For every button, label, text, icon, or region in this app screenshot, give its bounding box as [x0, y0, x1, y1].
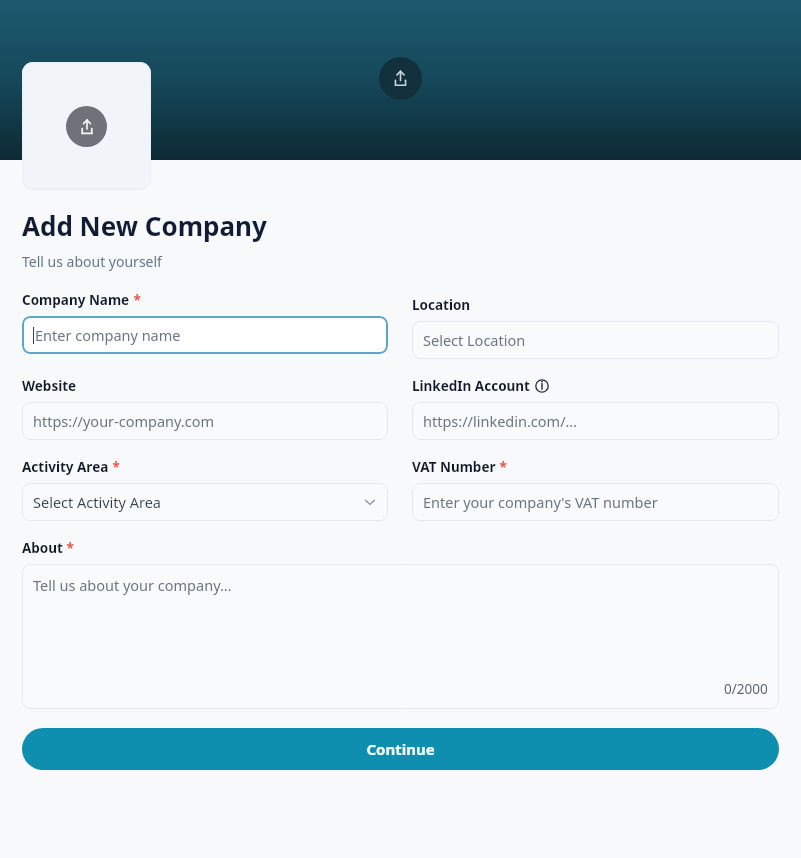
button[interactable]: Upload company logo — [22, 62, 151, 190]
staticText: * — [130, 291, 141, 309]
button[interactable]: https://your-company.com — [22, 402, 388, 440]
staticText: https://your-company.com — [33, 411, 215, 431]
staticText: * — [63, 539, 74, 557]
staticText: Add New Company — [22, 208, 267, 243]
staticText: https://linkedin.com/… — [423, 411, 577, 431]
button[interactable]: https://linkedin.com/… — [412, 402, 779, 440]
staticText: Enter company name — [35, 325, 181, 345]
staticText: Website — [22, 377, 77, 395]
staticText: VAT Number — [412, 458, 496, 476]
staticText: * — [496, 458, 507, 476]
button[interactable]: Tell us about your company… — [22, 564, 779, 709]
staticText: LinkedIn Account — [412, 377, 530, 395]
staticText: Company Name — [22, 291, 130, 309]
button[interactable]: Upload cover image — [0, 0, 801, 160]
staticText: Location — [412, 296, 471, 314]
staticText: About — [22, 539, 63, 557]
staticText: Select Activity Area — [33, 492, 162, 512]
button[interactable]: Enter your company's VAT number — [412, 483, 779, 521]
staticText: Select Location — [423, 330, 526, 350]
button[interactable]: Select Activity Area — [22, 483, 388, 521]
staticText: 0/2000 — [724, 680, 768, 698]
staticText: * — [109, 458, 120, 476]
button[interactable]: Upload cover photo — [379, 57, 422, 100]
staticText: Activity Area — [22, 458, 109, 476]
staticText: Enter your company's VAT number — [423, 492, 658, 512]
button[interactable]: Enter company name — [22, 316, 388, 354]
staticText: Tell us about your company… — [33, 575, 232, 595]
staticText: Continue — [366, 739, 435, 759]
button[interactable]: Select Location — [412, 321, 779, 359]
staticText: Tell us about yourself — [22, 252, 162, 271]
button[interactable]: Continue — [22, 728, 779, 770]
